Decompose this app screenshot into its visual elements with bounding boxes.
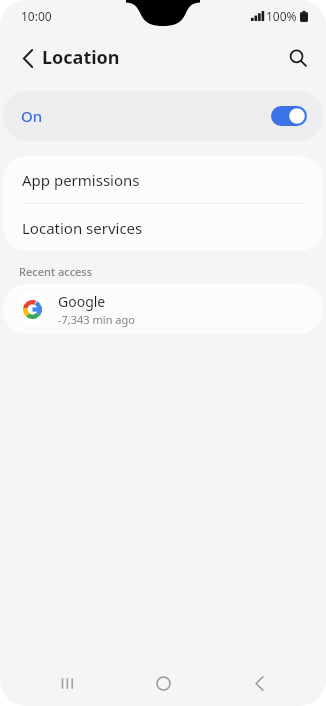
staticText: -7,343 min ago bbox=[58, 312, 135, 327]
staticText: 100% bbox=[266, 8, 297, 24]
staticText: 10:00 bbox=[21, 8, 52, 24]
button[interactable]: Search bbox=[281, 41, 315, 75]
staticText: Location bbox=[42, 45, 120, 70]
staticText: Location services bbox=[22, 218, 143, 238]
staticText: Recent access bbox=[19, 264, 93, 279]
staticText: App permissions bbox=[22, 170, 140, 190]
staticText: Google bbox=[58, 292, 106, 311]
button[interactable]: Back bbox=[11, 41, 45, 75]
button[interactable]: On bbox=[3, 91, 323, 141]
button[interactable]: Location services bbox=[3, 204, 323, 251]
button[interactable]: Recents bbox=[40, 662, 96, 704]
button[interactable]: App permissions bbox=[3, 156, 323, 203]
button[interactable]: Back bbox=[231, 662, 287, 704]
button[interactable]: Google bbox=[3, 284, 323, 334]
button[interactable]: Home bbox=[135, 662, 191, 704]
staticText: On bbox=[21, 106, 43, 126]
